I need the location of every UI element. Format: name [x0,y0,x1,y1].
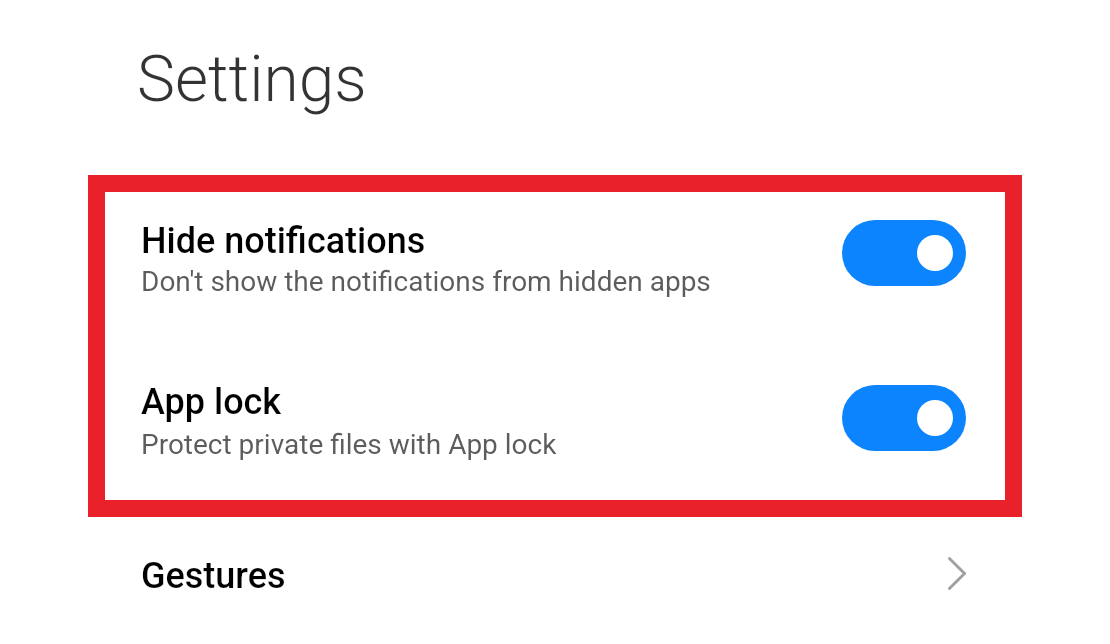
button[interactable]: Hide notifications [105,192,1005,346]
button[interactable]: App lock [105,346,1005,500]
staticText: Protect private files with App lock [141,428,557,461]
staticText: Don't show the notifications from hidden… [141,265,711,298]
button[interactable]: App lock, on [842,385,966,451]
button[interactable]: Gestures [0,513,1110,639]
staticText: App lock [141,381,282,423]
staticText: Gestures [141,555,286,597]
staticText: Hide notifications [141,220,426,262]
button[interactable]: Hide notifications, on [842,220,966,286]
staticText: Settings [137,42,367,117]
